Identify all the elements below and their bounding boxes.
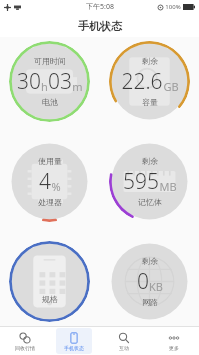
staticText: 剩余 <box>142 156 158 166</box>
button[interactable]: Battery 30h03m <box>9 41 90 122</box>
staticText: 互动 <box>119 345 129 351</box>
staticText: 记忆体 <box>138 197 162 207</box>
staticText: GB <box>163 79 179 94</box>
staticText: 使用量 <box>38 156 62 166</box>
staticText: 电池 <box>42 97 58 107</box>
staticText: 100% <box>165 3 181 11</box>
staticText: KB <box>149 279 163 294</box>
staticText: 30 <box>17 67 41 96</box>
staticText: h <box>41 79 48 94</box>
staticText: 下午5:08 <box>86 2 114 12</box>
staticText: 剩余 <box>142 256 158 266</box>
button[interactable]: Storage 22.6 GB <box>109 41 190 122</box>
staticText: 可用时间 <box>34 56 66 66</box>
staticText: 更多 <box>169 345 179 351</box>
button[interactable]: Specifications <box>9 241 90 322</box>
staticText: 手机状态 <box>64 345 84 351</box>
button[interactable]: 手机状态 <box>56 328 92 354</box>
button[interactable]: 互动 <box>106 328 142 354</box>
staticText: 03 <box>48 67 72 96</box>
button[interactable]: Memory 595 MB <box>109 141 190 222</box>
staticText: 22.6 <box>121 67 163 96</box>
button[interactable]: 回收行情 <box>7 328 42 354</box>
button[interactable]: 更多 <box>156 328 192 354</box>
staticText: 4 <box>39 167 51 196</box>
button[interactable]: CPU 4 percent <box>9 141 90 222</box>
staticText: 手机状态 <box>78 19 122 33</box>
staticText: % <box>51 179 61 194</box>
staticText: MB <box>159 179 177 194</box>
staticText: 网路 <box>142 297 158 307</box>
staticText: 容量 <box>142 97 158 107</box>
staticText: m <box>72 79 83 94</box>
staticText: 595 <box>123 167 159 196</box>
staticText: 剩余 <box>142 56 158 66</box>
button[interactable]: Network 0 KB <box>109 241 190 322</box>
staticText: 处理器 <box>38 197 62 207</box>
staticText: 0 <box>137 267 149 296</box>
staticText: 规格 <box>42 294 58 304</box>
staticText: 回收行情 <box>15 345 35 351</box>
